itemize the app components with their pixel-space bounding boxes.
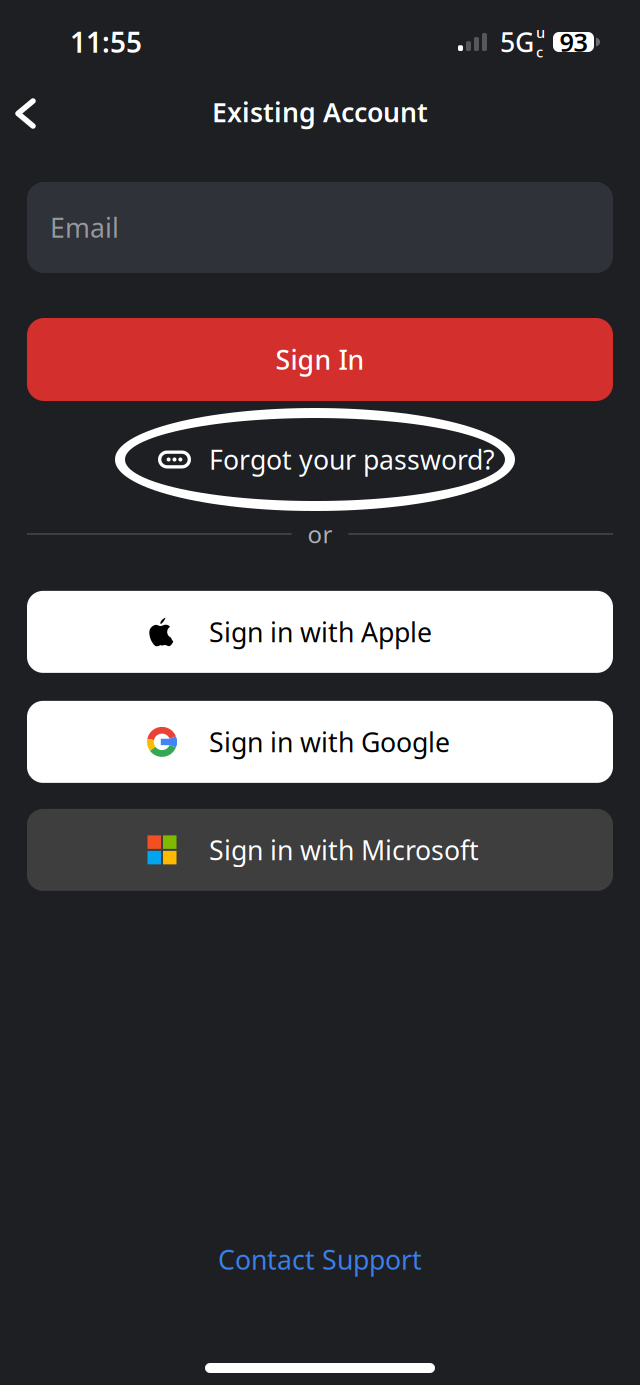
staticText: Contact Support	[218, 1242, 422, 1277]
button[interactable]: Sign in with Apple	[0, 591, 640, 673]
staticText: u	[536, 22, 545, 42]
staticText: Existing Account	[212, 94, 428, 130]
button[interactable]: Sign in with Google	[0, 701, 640, 783]
staticText: 11:55	[70, 23, 142, 61]
staticText: Sign In	[275, 342, 364, 377]
staticText: Sign in with Microsoft	[209, 832, 479, 868]
button[interactable]: Sign In	[0, 318, 640, 401]
staticText: Forgot your password?	[209, 442, 495, 477]
staticText: 5G	[500, 24, 534, 60]
staticText: Email	[50, 210, 119, 245]
button[interactable]: Sign in with Microsoft	[0, 809, 640, 891]
button[interactable]: Forgot your password?	[135, 424, 495, 494]
staticText: Sign in with Google	[209, 724, 450, 760]
button[interactable]: Email	[0, 182, 640, 273]
button[interactable]: Contact Support	[194, 1228, 446, 1291]
staticText: or	[307, 518, 332, 550]
staticText: c	[536, 42, 543, 61]
button[interactable]: Back	[0, 60, 56, 144]
staticText: 93	[559, 25, 587, 59]
staticText: Sign in with Apple	[209, 614, 432, 650]
